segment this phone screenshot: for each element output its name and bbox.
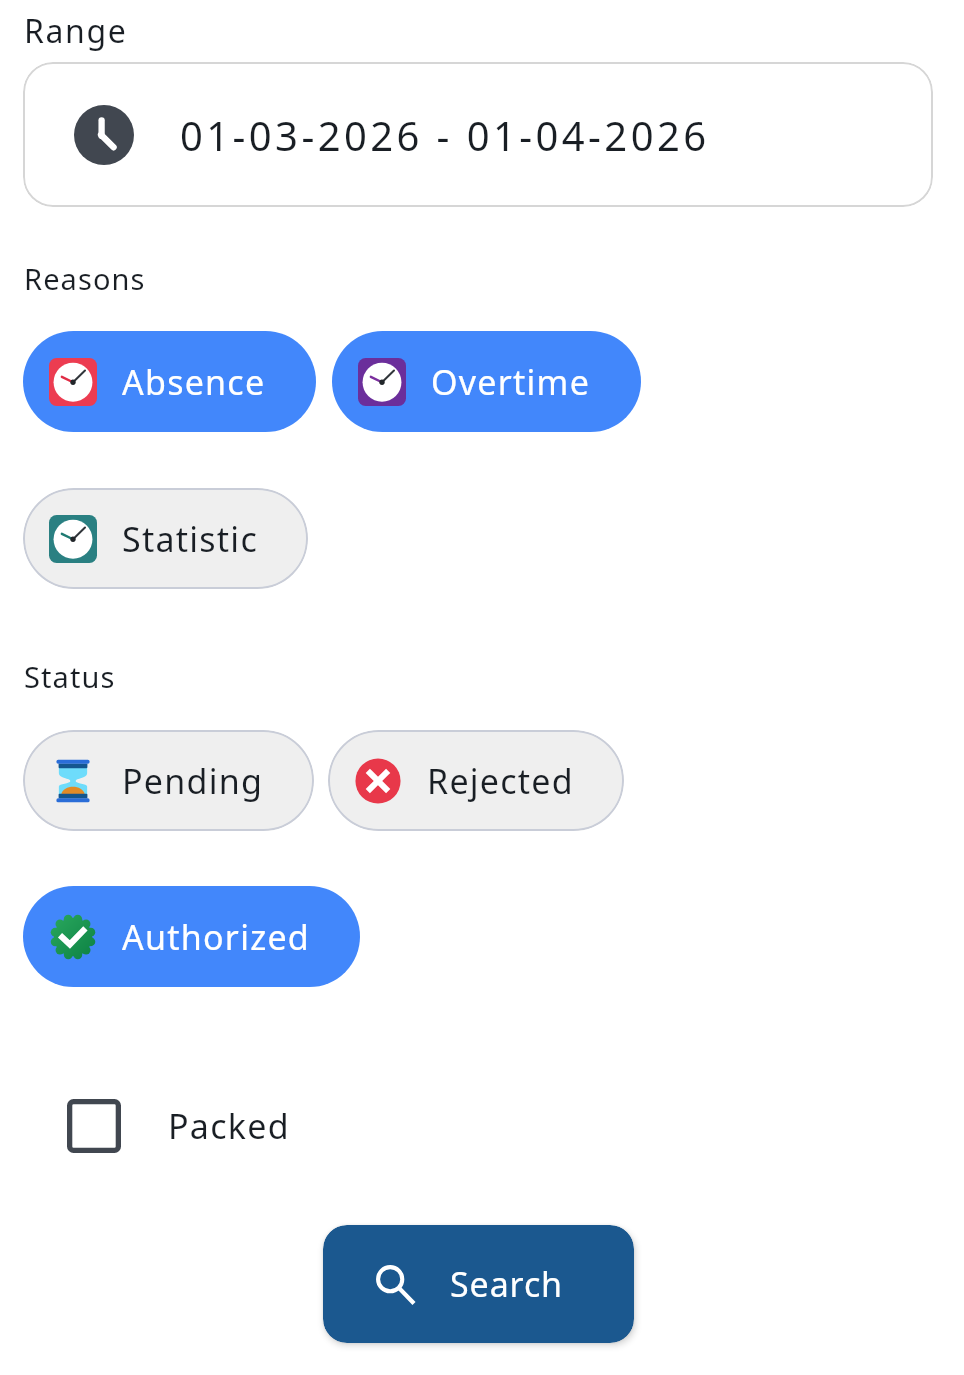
staticText: Statistic <box>122 516 258 562</box>
staticText: Absence <box>122 359 266 405</box>
other: Pick date range <box>74 105 134 165</box>
staticText: Status <box>24 657 116 696</box>
button[interactable]: Absence <box>23 331 316 432</box>
button[interactable]: Overtime <box>332 331 641 432</box>
staticText: Pending <box>122 758 264 804</box>
button[interactable]: Pending <box>23 730 314 831</box>
staticText: Search <box>450 1261 564 1307</box>
staticText: Packed <box>168 1103 291 1149</box>
button[interactable]: Pick date range <box>23 62 933 207</box>
staticText: Overtime <box>431 359 591 405</box>
staticText: Reasons <box>24 259 146 298</box>
staticText: Range <box>24 9 128 53</box>
staticText: 01-03-2026 - 01-04-2026 <box>180 108 710 162</box>
button[interactable]: Packed <box>45 1089 313 1163</box>
button[interactable]: Statistic <box>23 488 308 589</box>
staticText: Rejected <box>427 758 574 804</box>
button[interactable]: Rejected <box>328 730 624 831</box>
button[interactable]: Authorized <box>23 886 360 987</box>
staticText: Authorized <box>122 914 310 960</box>
button[interactable]: Search <box>323 1225 634 1343</box>
